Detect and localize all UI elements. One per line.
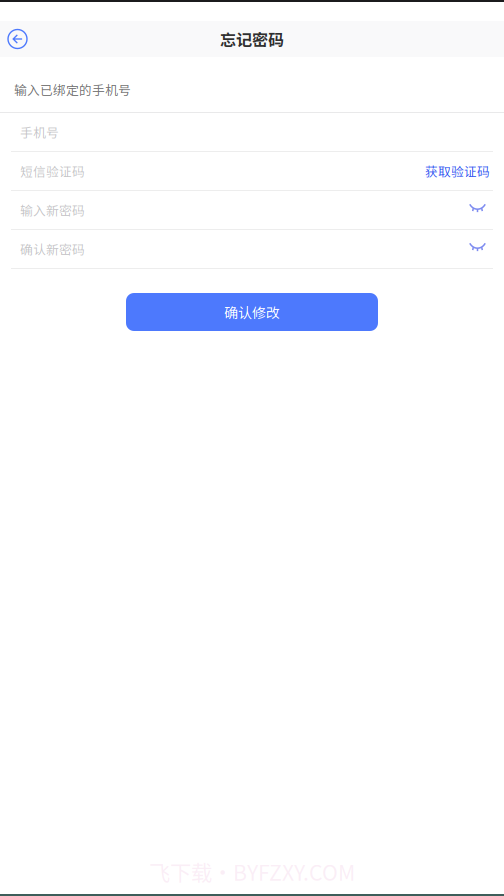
staticText: 确认修改 [224,302,280,322]
button[interactable]: Back [0,21,37,56]
staticText: 输入已绑定的手机号 [14,80,131,99]
staticText: 忘记密码 [220,27,284,51]
button[interactable]: Show new password [455,195,490,224]
staticText: 获取验证码 [425,162,490,180]
staticText: 手机号 [20,123,59,141]
staticText: 短信验证码 [20,162,85,180]
button[interactable]: 输入新密码 [0,191,455,229]
button[interactable]: 获取验证码 [413,153,490,189]
button[interactable]: 短信验证码 [0,152,413,190]
button[interactable]: 确认修改 [126,293,378,331]
staticText: 输入新密码 [20,201,85,219]
staticText: 确认新密码 [20,240,85,258]
button[interactable]: 确认新密码 [0,230,455,268]
button[interactable]: 手机号 [0,113,490,151]
button[interactable]: Show confirmed password [455,234,490,263]
staticText: 飞下载·BYFZXY.COM [149,856,355,887]
